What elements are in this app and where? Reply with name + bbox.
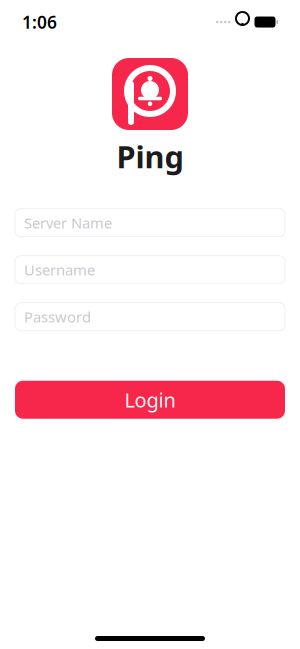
button[interactable]: Password bbox=[15, 303, 285, 331]
button[interactable]: Server Name bbox=[15, 209, 285, 237]
staticText: Server Name bbox=[24, 213, 112, 232]
staticText: Login bbox=[124, 386, 175, 413]
staticText: Username bbox=[24, 260, 95, 279]
staticText: Password bbox=[24, 307, 91, 326]
button[interactable]: Username bbox=[15, 256, 285, 284]
button[interactable]: Login bbox=[15, 381, 285, 419]
staticText: Ping bbox=[116, 136, 183, 177]
staticText: 1:06 bbox=[22, 10, 57, 33]
